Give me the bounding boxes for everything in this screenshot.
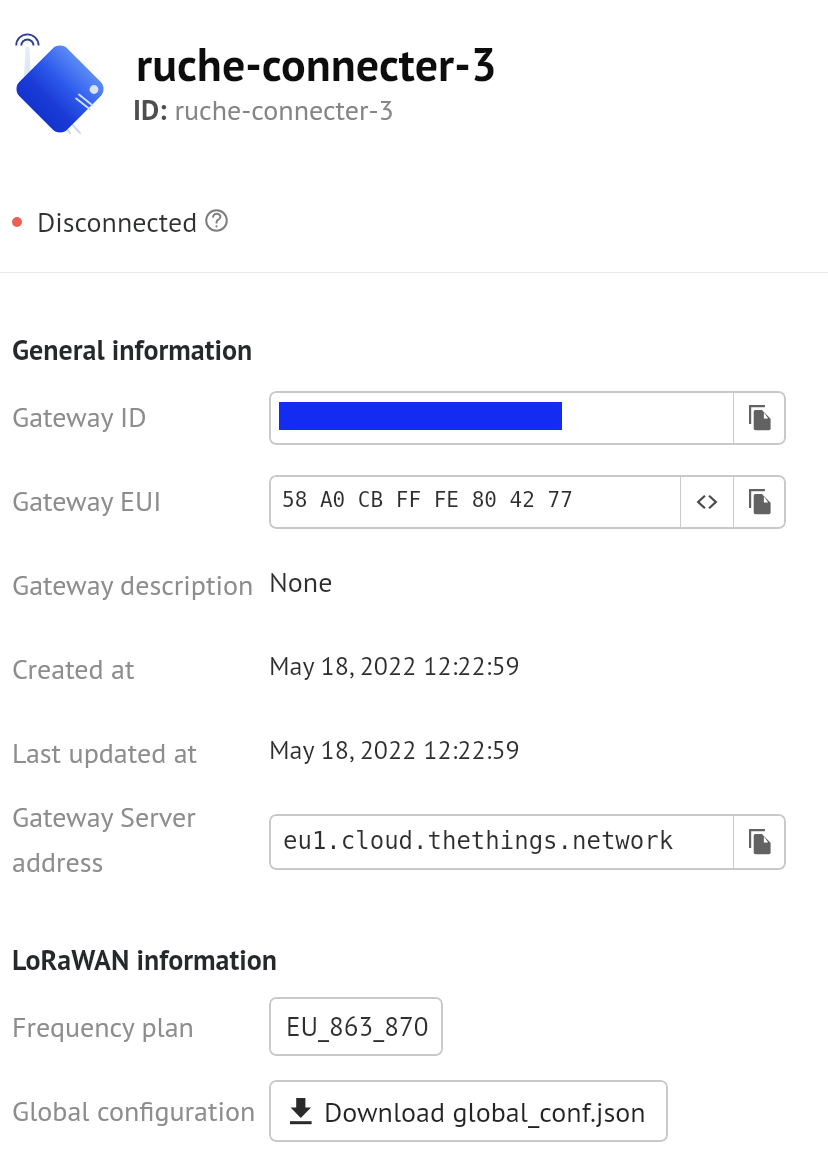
staticText: General information (12, 331, 253, 367)
staticText: Gateway EUI (12, 482, 162, 518)
button[interactable]: Copy to clipboard (734, 475, 786, 529)
staticText: ID: (133, 91, 167, 127)
button[interactable]: Download global_conf.json (269, 1080, 668, 1142)
staticText: None (269, 563, 333, 599)
staticText: Download global_conf.json (324, 1093, 646, 1129)
staticText: Gateway ID (12, 398, 147, 434)
staticText: LoRaWAN information (12, 941, 278, 977)
staticText: eu1.cloud.thethings.network (283, 827, 674, 855)
staticText: May 18, 2022 12:22:59 (269, 733, 520, 767)
button[interactable]: EU_863_870 (269, 997, 443, 1056)
button[interactable]: Toggle EUI format (681, 475, 733, 529)
staticText: May 18, 2022 12:22:59 (269, 649, 520, 683)
staticText: Frequency plan (12, 1008, 194, 1044)
staticText: 58 A0 CB FF FE 80 42 77 (282, 488, 573, 512)
button[interactable]: Copy to clipboard (734, 391, 786, 445)
staticText: ruche-connecter-3 (167, 91, 394, 127)
staticText: Gateway description (12, 566, 254, 602)
staticText: Created at (12, 650, 135, 686)
staticText: ruche-connecter-3 (136, 34, 497, 94)
staticText: Global configuration (12, 1092, 256, 1128)
staticText: Last updated at (12, 734, 198, 770)
staticText: Disconnected (37, 203, 198, 239)
staticText: EU_863_870 (286, 1009, 429, 1044)
staticText: Gateway Server address (12, 798, 196, 880)
button[interactable]: Disconnected (6, 202, 236, 242)
button[interactable]: Copy to clipboard (734, 814, 786, 870)
